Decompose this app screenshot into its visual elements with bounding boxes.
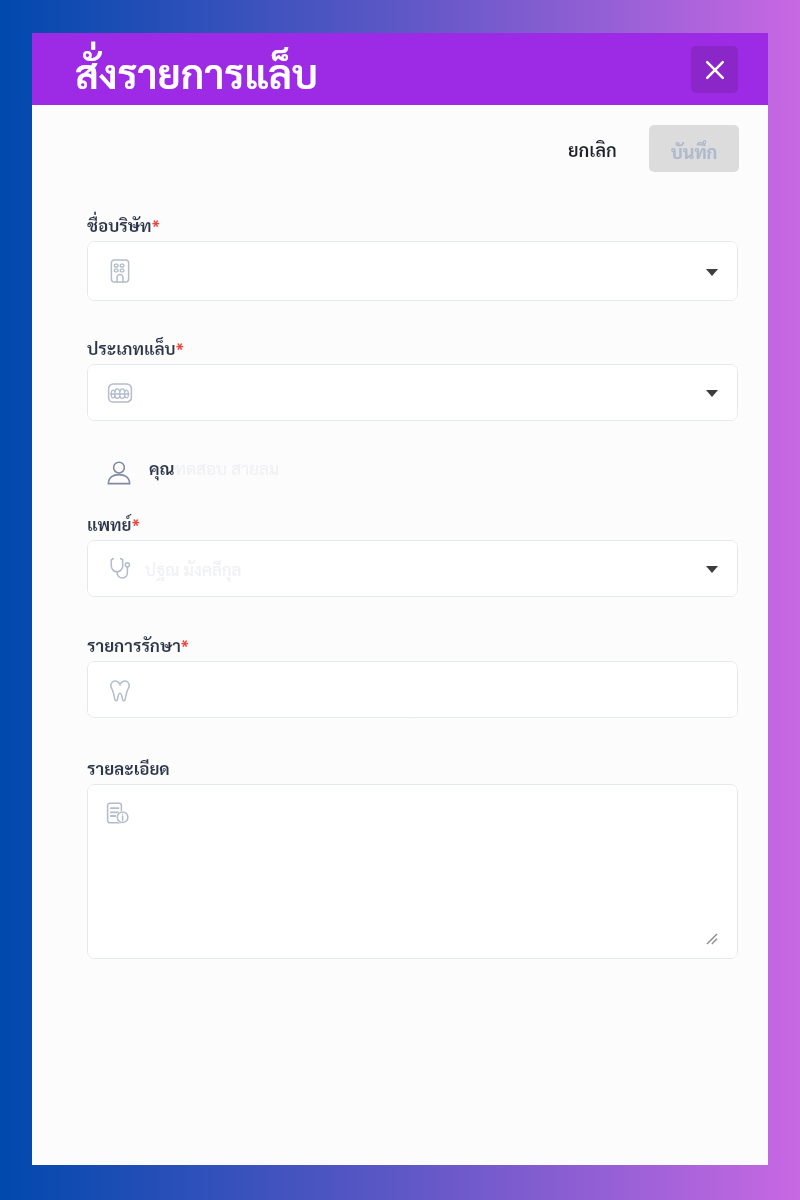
button[interactable]: บันทึก (649, 125, 739, 172)
staticText: * (181, 635, 189, 657)
staticText: แพทย์ (87, 513, 132, 535)
staticText: * (152, 215, 160, 237)
staticText: ทดสอบ สายลม (175, 457, 280, 479)
button[interactable] (87, 364, 738, 421)
button[interactable] (87, 661, 738, 718)
staticText: คุณ (149, 457, 175, 479)
staticText: สั่งรายการแล็บ (75, 46, 319, 98)
staticText: * (176, 338, 184, 360)
staticText: ปฐณ มังคลีกุล (145, 558, 242, 580)
button[interactable]: ยกเลิก (558, 128, 627, 169)
staticText: รายละเอียด (87, 757, 170, 779)
staticText: รายการรักษา (87, 634, 181, 656)
staticText: * (132, 514, 140, 536)
staticText: ชื่อบริษัท (87, 214, 152, 236)
staticText: บันทึก (671, 140, 718, 163)
staticText: ประเภทแล็บ (87, 337, 176, 359)
button[interactable] (87, 241, 738, 301)
staticText: ยกเลิก (568, 138, 617, 161)
button[interactable]: Close (691, 46, 738, 93)
button[interactable]: ปฐณ มังคลีกุล (87, 540, 738, 597)
button[interactable] (87, 784, 738, 959)
